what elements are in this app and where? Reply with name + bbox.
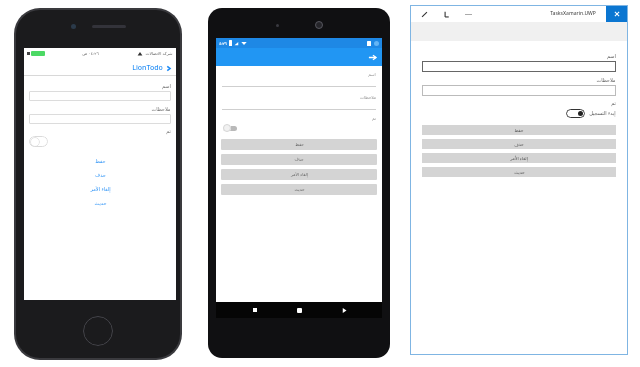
button[interactable]: Done toggle bbox=[29, 136, 48, 147]
staticText: تم bbox=[372, 116, 376, 121]
button[interactable] bbox=[422, 85, 616, 96]
button[interactable]: حفظ bbox=[422, 125, 616, 135]
button[interactable]: حذف bbox=[24, 168, 176, 182]
button[interactable]: حذف bbox=[221, 154, 377, 165]
button[interactable]: Edit bbox=[418, 8, 430, 20]
button[interactable]: إلغاء الأمر bbox=[24, 182, 176, 196]
button[interactable]: Done switch bbox=[223, 123, 240, 133]
button[interactable]: حديث bbox=[422, 167, 616, 177]
staticText: حفظ bbox=[514, 128, 524, 133]
staticText: إلغاء الأمر bbox=[510, 155, 528, 161]
staticText: إبدء التسجيل bbox=[589, 110, 616, 117]
staticText: ٠٤:٢٦ ص bbox=[82, 51, 99, 57]
staticText: حذف bbox=[95, 172, 106, 178]
other: Forward bbox=[165, 65, 172, 72]
staticText: ٤:٢٦ bbox=[219, 41, 227, 46]
button[interactable]: إلغاء الأمر bbox=[221, 169, 377, 180]
staticText: اسم bbox=[162, 83, 171, 89]
staticText: حفظ bbox=[295, 142, 304, 147]
staticText: ملاحظات bbox=[596, 77, 616, 83]
button[interactable]: إلغاء الأمر bbox=[422, 153, 616, 163]
button[interactable]: Close bbox=[606, 5, 628, 22]
button[interactable]: Home bbox=[293, 304, 305, 316]
staticText: TasksXamarin.UWP bbox=[550, 10, 596, 17]
staticText: اسم bbox=[368, 72, 376, 77]
button[interactable]: Back bbox=[249, 304, 261, 316]
button[interactable]: حفظ bbox=[221, 139, 377, 150]
button[interactable] bbox=[29, 114, 171, 124]
button[interactable]: حفظ bbox=[24, 154, 176, 168]
staticText: حديث bbox=[294, 187, 305, 192]
button[interactable]: Start recording toggle bbox=[566, 109, 616, 118]
staticText: إلغاء الأمر bbox=[291, 172, 308, 178]
button[interactable]: Minimize bbox=[462, 8, 474, 20]
staticText: ملاحظات bbox=[151, 106, 171, 112]
staticText: تم bbox=[611, 100, 616, 106]
button[interactable]: Next bbox=[366, 51, 378, 63]
staticText: حذف bbox=[514, 142, 524, 147]
staticText: حديث bbox=[94, 200, 107, 206]
staticText: اسم bbox=[607, 53, 616, 59]
button[interactable] bbox=[29, 91, 171, 101]
button[interactable]: Back bbox=[440, 8, 452, 20]
staticText: شركة الاتصالات bbox=[145, 51, 173, 57]
staticText: إلغاء الأمر bbox=[90, 186, 111, 193]
button[interactable]: LionTodo bbox=[132, 63, 172, 73]
staticText: حديث bbox=[514, 170, 525, 175]
staticText: حفظ bbox=[95, 158, 106, 164]
button[interactable]: Recents bbox=[338, 304, 350, 316]
button[interactable]: حذف bbox=[422, 139, 616, 149]
staticText: حذف bbox=[294, 157, 304, 162]
staticText: ملاحظات bbox=[360, 95, 376, 100]
staticText: تم bbox=[166, 128, 171, 134]
staticText: LionTodo bbox=[132, 63, 163, 73]
button[interactable] bbox=[422, 61, 616, 72]
button[interactable]: حديث bbox=[24, 196, 176, 210]
button[interactable]: حديث bbox=[221, 184, 377, 195]
